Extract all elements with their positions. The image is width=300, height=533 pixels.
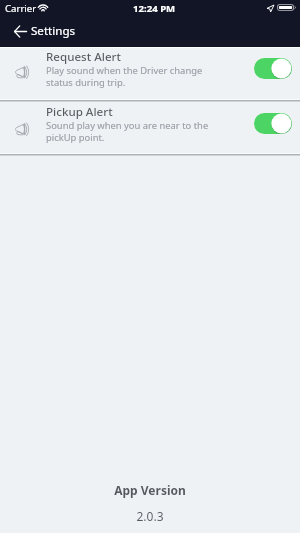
button[interactable]: Request Alert <box>0 48 300 99</box>
staticText: pickUp point. <box>46 131 105 144</box>
staticText: status during trip. <box>46 76 126 89</box>
staticText: Play sound when the Driver change <box>46 64 203 77</box>
staticText: Pickup Alert <box>46 104 113 120</box>
staticText: Carrier <box>5 2 37 15</box>
staticText: Request Alert <box>46 49 121 65</box>
staticText: Sound play when you are near to the <box>46 119 209 132</box>
button[interactable]: Back <box>11 22 29 41</box>
button[interactable]: Toggle setting <box>254 58 292 79</box>
staticText: 12:24 PM <box>133 2 176 15</box>
staticText: 2.0.3 <box>136 508 164 524</box>
button[interactable]: Toggle setting <box>254 113 292 134</box>
button[interactable]: Pickup Alert <box>0 102 300 153</box>
staticText: App Version <box>114 482 186 498</box>
staticText: Settings <box>31 23 76 39</box>
